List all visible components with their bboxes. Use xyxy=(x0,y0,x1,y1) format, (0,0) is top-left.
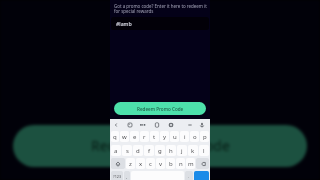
staticText: Got a promo code? Enter it here to redee… xyxy=(114,3,210,14)
staticText: ?123 xyxy=(113,174,122,179)
staticText: t xyxy=(153,133,156,141)
button[interactable]: z xyxy=(126,158,135,169)
staticText: a xyxy=(114,147,118,155)
staticText: g xyxy=(158,147,162,155)
button[interactable]: , xyxy=(124,171,130,180)
button[interactable]: h xyxy=(166,145,176,156)
button[interactable]: n xyxy=(176,158,185,169)
button[interactable]: d xyxy=(133,145,143,156)
button[interactable]: t xyxy=(150,131,159,142)
staticText: , xyxy=(126,174,128,180)
staticText: v xyxy=(159,160,163,168)
button[interactable]: j xyxy=(177,145,187,156)
button[interactable]: #lamb xyxy=(111,17,209,30)
staticText: k xyxy=(191,147,195,155)
button[interactable]: Enter xyxy=(194,171,209,180)
button[interactable]: b xyxy=(166,158,175,169)
staticText: i xyxy=(184,133,186,141)
button[interactable]: Stickers xyxy=(125,120,135,130)
button[interactable]: e xyxy=(130,131,139,142)
staticText: Redeem Promo Code xyxy=(91,136,230,155)
staticText: r xyxy=(143,133,146,141)
staticText: Redeem Promo Code xyxy=(137,106,184,112)
staticText: #lamb xyxy=(116,20,132,27)
button[interactable]: a xyxy=(111,145,121,156)
button[interactable]: Clipboard xyxy=(152,120,162,130)
button[interactable]: c xyxy=(146,158,155,169)
button[interactable]: ?123 xyxy=(111,171,123,180)
button[interactable]: l xyxy=(199,145,209,156)
button[interactable]: . xyxy=(185,171,193,180)
button[interactable]: f xyxy=(144,145,154,156)
staticText: s xyxy=(126,147,129,155)
staticText: f xyxy=(148,147,151,155)
staticText: p xyxy=(203,133,207,141)
staticText: l xyxy=(203,147,205,155)
button[interactable]: s xyxy=(122,145,132,156)
button[interactable]: m xyxy=(186,158,195,169)
button[interactable]: r xyxy=(140,131,149,142)
button[interactable]: x xyxy=(136,158,145,169)
staticText: x xyxy=(139,160,143,168)
button[interactable]: w xyxy=(120,131,129,142)
button[interactable]: y xyxy=(160,131,169,142)
staticText: c xyxy=(149,160,152,168)
button[interactable]: Voice input xyxy=(197,120,207,130)
staticText: z xyxy=(129,160,132,168)
button[interactable]: Settings xyxy=(166,120,176,130)
staticText: y xyxy=(163,133,167,141)
staticText: u xyxy=(173,133,177,141)
staticText: . xyxy=(188,174,190,180)
button[interactable]: GIF xyxy=(138,120,148,130)
button[interactable]: More options xyxy=(185,120,195,130)
button[interactable]: q xyxy=(111,131,119,142)
button[interactable]: v xyxy=(156,158,165,169)
button[interactable]: Redeem Promo Code xyxy=(114,102,206,115)
button[interactable]: Backspace xyxy=(196,158,209,169)
button[interactable]: k xyxy=(188,145,198,156)
button[interactable]: Back xyxy=(111,120,121,130)
button[interactable]: o xyxy=(190,131,199,142)
staticText: h xyxy=(169,147,173,155)
staticText: d xyxy=(136,147,140,155)
staticText: e xyxy=(133,133,137,141)
staticText: j xyxy=(181,147,183,155)
button[interactable]: u xyxy=(170,131,179,142)
staticText: m xyxy=(188,160,194,168)
staticText: q xyxy=(113,133,117,141)
button[interactable]: p xyxy=(200,131,209,142)
staticText: w xyxy=(122,133,127,141)
staticText: o xyxy=(193,133,197,141)
button[interactable]: i xyxy=(180,131,189,142)
button[interactable]: Shift xyxy=(111,158,125,169)
staticText: b xyxy=(169,160,173,168)
button[interactable]: g xyxy=(155,145,165,156)
staticText: n xyxy=(179,160,183,168)
